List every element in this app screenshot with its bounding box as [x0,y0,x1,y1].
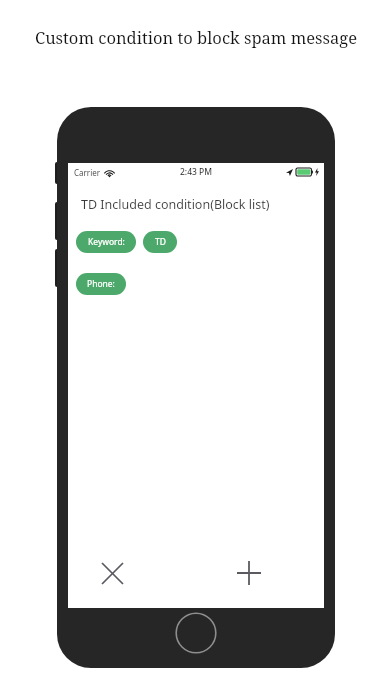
staticText: Carrier [74,167,101,178]
button[interactable]: Add [227,551,271,595]
staticText: TD Included condition(Block list) [81,196,270,213]
staticText: TD [155,236,166,248]
staticText: 2:43 PM [180,166,213,178]
button[interactable]: TD [143,231,177,253]
staticText: Keyword: [88,236,125,248]
button[interactable]: Keyword: [76,231,136,253]
staticText: Phone: [87,278,115,290]
staticText: Custom condition to block spam message [0,26,392,48]
button[interactable]: Home [175,612,217,654]
button[interactable]: Cancel [90,551,134,595]
button[interactable]: Phone: [76,273,126,295]
